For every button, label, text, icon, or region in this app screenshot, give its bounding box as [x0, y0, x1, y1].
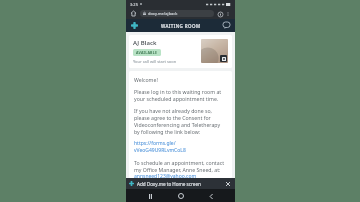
button[interactable]: Home — [175, 190, 187, 202]
button[interactable]: More options — [224, 10, 232, 18]
button[interactable]: Chat — [221, 20, 232, 31]
button[interactable]: Doxy.me logo — [129, 20, 140, 31]
staticText: Welcome! — [134, 76, 158, 83]
button[interactable]: AJ Black — [129, 35, 232, 68]
staticText: If you have not already done so, please … — [134, 107, 227, 135]
button[interactable]: annsneed123@yahoo.com — [134, 173, 197, 178]
staticText: doxy.me/ajback — [148, 11, 178, 16]
staticText: Your call will start soon — [133, 59, 177, 64]
button[interactable]: doxy.me/ajback — [140, 10, 214, 17]
button[interactable]: Page info — [216, 10, 224, 18]
button[interactable]: Dismiss — [224, 180, 232, 188]
button[interactable]: Back — [205, 190, 217, 202]
button[interactable]: Recents — [144, 190, 156, 202]
staticText: To schedule an appointment, contact my O… — [134, 159, 227, 173]
button[interactable]: Add Doxy.me to Home screen — [126, 178, 235, 189]
staticText: WAITING ROOM — [161, 23, 201, 29]
staticText: AJ Black — [133, 39, 157, 47]
staticText: Please log in to this waiting room at yo… — [134, 88, 227, 102]
button[interactable]: Home — [129, 9, 138, 18]
staticText: 3:25 — [130, 2, 138, 7]
staticText: Add Doxy.me to Home screen — [137, 181, 201, 187]
button[interactable]: https://forms.gle/vVeoG49U9RLvmCoL8 — [134, 140, 227, 154]
button[interactable]: Camera settings — [220, 55, 227, 62]
staticText: AVAILABLE — [136, 50, 158, 55]
button[interactable]: Self view — [201, 39, 228, 63]
